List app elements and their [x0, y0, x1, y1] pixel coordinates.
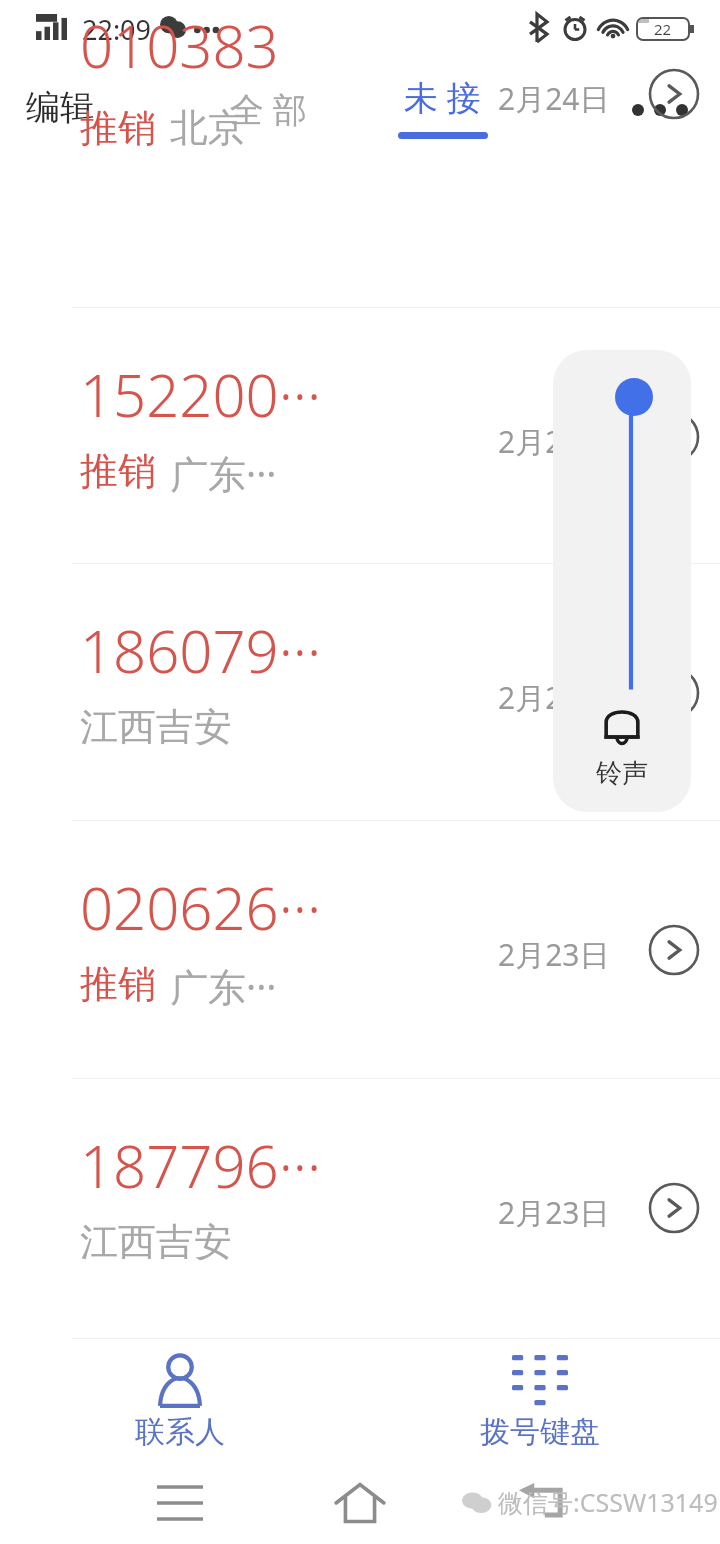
staticText: 推销	[80, 960, 156, 1008]
staticText: 编辑	[26, 86, 94, 129]
button[interactable]: 编辑	[14, 74, 106, 141]
staticText: 微信号:CSSW13149191	[498, 1485, 720, 1519]
button[interactable]: 152200···	[0, 307, 720, 564]
button[interactable]: Call details	[648, 411, 700, 463]
button[interactable]: 020626···	[0, 820, 720, 1077]
button[interactable]: 联系人	[0, 1339, 360, 1461]
staticText: 187796···	[80, 1126, 322, 1205]
button[interactable]: Call details	[648, 68, 700, 120]
staticText: 北京	[170, 104, 246, 152]
button[interactable]: Call details	[648, 924, 700, 976]
staticText: 铃声	[596, 757, 648, 790]
staticText: 22	[654, 19, 672, 39]
staticText: 2月23日	[498, 934, 610, 975]
staticText: 江西吉安	[80, 1218, 232, 1266]
button[interactable]: Recent apps	[130, 1473, 230, 1533]
button[interactable]: 拨号键盘	[360, 1339, 720, 1461]
button[interactable]: 全 部	[218, 74, 319, 144]
staticText: 2月23日	[498, 1192, 610, 1233]
button[interactable]: 186079···	[0, 563, 720, 820]
button[interactable]: More options	[620, 78, 700, 142]
button[interactable]: Call details	[648, 667, 700, 719]
staticText: 020626···	[80, 868, 322, 947]
staticText: 2月24日	[498, 78, 610, 119]
button[interactable]: 铃声	[596, 703, 648, 790]
staticText: 22:09	[82, 11, 152, 48]
staticText: 推销	[80, 447, 156, 495]
staticText: 152200···	[80, 355, 322, 434]
staticText: 全 部	[230, 86, 307, 132]
staticText: 广东···	[170, 447, 277, 499]
staticText: 未 接	[404, 74, 481, 120]
staticText: 2月23日	[498, 421, 610, 462]
staticText: 010383	[80, 6, 279, 85]
staticText: 推销	[80, 104, 156, 152]
staticText: 拨号键盘	[480, 1413, 600, 1451]
staticText: 联系人	[135, 1413, 225, 1451]
button[interactable]: Home	[310, 1471, 410, 1535]
button[interactable]: Volume slider	[615, 378, 653, 416]
button[interactable]: 010383	[0, 50, 720, 307]
button[interactable]: Back	[490, 1471, 590, 1535]
button[interactable]: 未 接	[392, 74, 493, 139]
staticText: 2月23日	[498, 677, 610, 718]
staticText: 广东···	[170, 960, 277, 1012]
staticText: 186079···	[80, 611, 322, 690]
button[interactable]: Call details	[648, 1182, 700, 1234]
button[interactable]: 187796···	[0, 1078, 720, 1335]
staticText: 江西吉安	[80, 703, 232, 751]
